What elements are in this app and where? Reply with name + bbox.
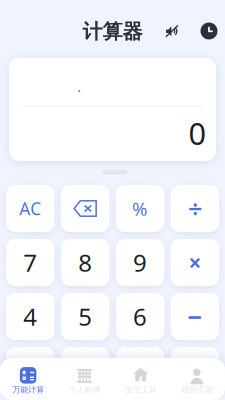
button[interactable]: 6 <box>116 293 164 340</box>
button[interactable]: + <box>171 347 219 394</box>
button[interactable]: − <box>171 293 219 340</box>
button[interactable]: 1 <box>6 347 54 394</box>
staticText: 计算器 <box>82 19 142 44</box>
staticText: × <box>188 247 201 277</box>
button[interactable]: AC <box>6 185 54 232</box>
staticText: 个人账簿 <box>68 385 100 395</box>
staticText: 5 <box>78 301 92 332</box>
staticText: 3 <box>133 355 147 386</box>
button[interactable]: 我的页面 <box>169 364 225 398</box>
staticText: + <box>188 354 202 387</box>
staticText: 8 <box>78 247 92 278</box>
button[interactable]: 生活工具 <box>112 364 169 398</box>
button[interactable]: ÷ <box>171 185 219 232</box>
staticText: 万能计算 <box>12 385 44 395</box>
staticText: 2 <box>78 355 92 386</box>
button[interactable]: 8 <box>61 239 109 286</box>
button[interactable]: Backspace <box>61 185 109 232</box>
button[interactable]: 4 <box>6 293 54 340</box>
button[interactable]: 3 <box>116 347 164 394</box>
button[interactable]: History <box>200 22 217 39</box>
staticText: . <box>77 75 81 97</box>
button[interactable]: 9 <box>116 239 164 286</box>
staticText: 4 <box>23 301 37 332</box>
staticText: ÷ <box>188 192 202 225</box>
button[interactable]: % <box>116 185 164 232</box>
button[interactable]: 2 <box>61 347 109 394</box>
button[interactable]: Mute <box>165 25 178 37</box>
staticText: AC <box>19 197 41 220</box>
staticText: − <box>187 300 202 333</box>
button[interactable]: × <box>171 239 219 286</box>
button[interactable]: 个人账簿 <box>56 364 112 398</box>
button[interactable]: 5 <box>61 293 109 340</box>
button[interactable]: 万能计算 <box>0 364 56 398</box>
staticText: 9 <box>133 247 147 278</box>
button[interactable]: 7 <box>6 239 54 286</box>
staticText: 7 <box>23 247 37 278</box>
staticText: 6 <box>133 301 147 332</box>
staticText: 生活工具 <box>125 385 157 395</box>
staticText: % <box>132 196 148 221</box>
staticText: 1 <box>23 355 37 386</box>
staticText: 我的页面 <box>181 385 213 395</box>
staticText: 0 <box>188 113 206 153</box>
